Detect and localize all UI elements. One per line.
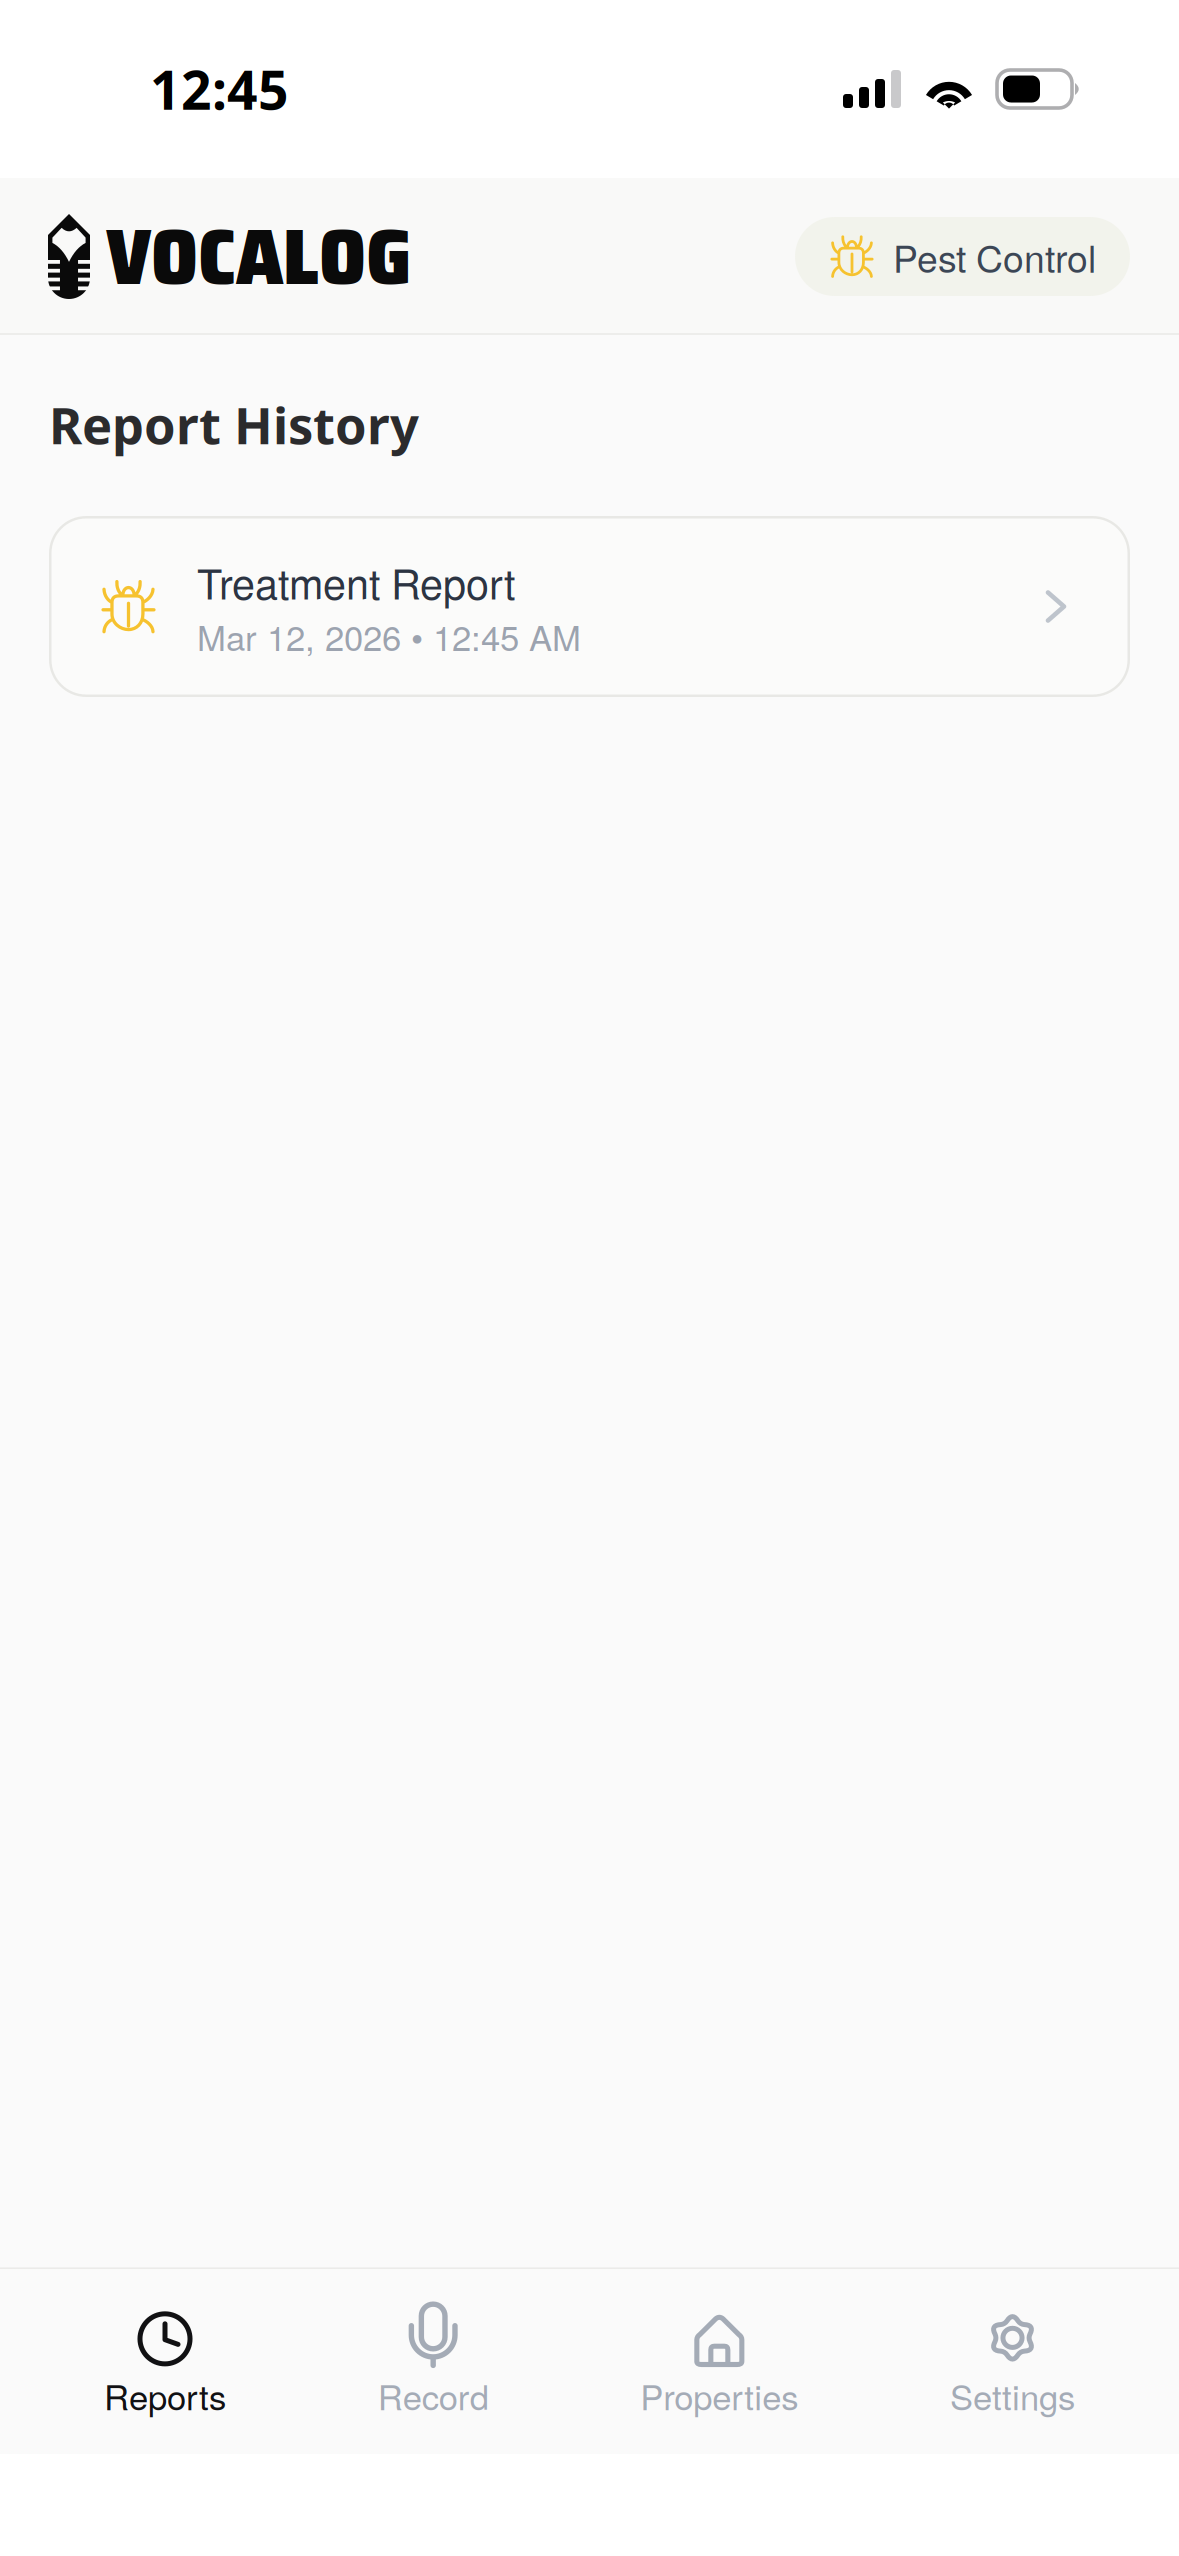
staticText: 12:45 (150, 53, 289, 125)
staticText: Record (378, 2370, 489, 2420)
button[interactable]: Treatment Report (49, 516, 1130, 697)
button[interactable]: Reports (104, 2269, 226, 2454)
staticText: Properties (640, 2370, 798, 2420)
staticText: Mar 12, 2026 • 12:45 AM (197, 611, 581, 661)
button[interactable]: Properties (640, 2269, 798, 2454)
staticText: VOCALOG (106, 195, 411, 318)
staticText: Pest Control (893, 230, 1096, 283)
staticText: Settings (950, 2370, 1075, 2420)
button[interactable]: Record (378, 2269, 489, 2454)
staticText: Report History (49, 390, 419, 459)
staticText: Reports (104, 2370, 226, 2420)
staticText: Treatment Report (197, 552, 515, 611)
button[interactable]: Pest Control (795, 217, 1130, 296)
button[interactable]: Settings (950, 2269, 1075, 2454)
